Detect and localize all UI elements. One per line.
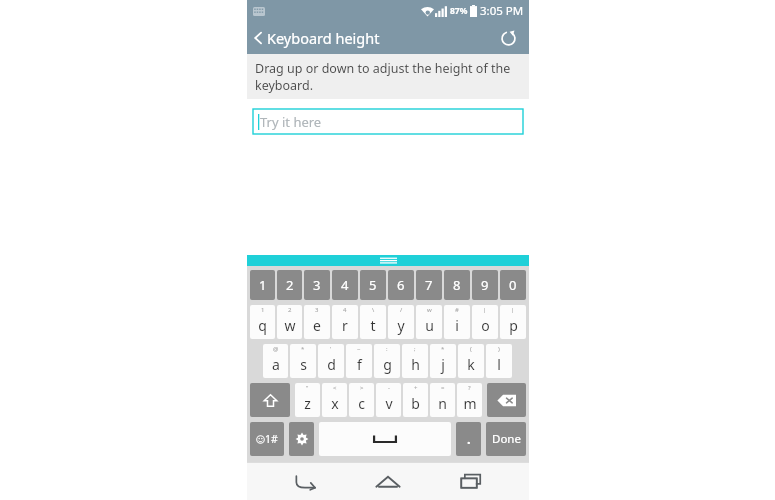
staticText: - [388, 384, 390, 392]
staticText: Drag up or down to adjust the height of … [255, 60, 521, 93]
button[interactable]: = [430, 383, 455, 417]
staticText: * [301, 345, 305, 353]
staticText: s [300, 355, 307, 374]
button[interactable]: - [376, 383, 401, 417]
staticText: p [509, 316, 518, 335]
button[interactable]: 3 [304, 305, 330, 339]
staticText: c [358, 394, 365, 413]
staticText: @ [273, 345, 279, 353]
staticText: l [497, 355, 501, 374]
button[interactable]: : [374, 344, 400, 378]
staticText: 2 [286, 276, 294, 294]
button[interactable]: Back [280, 465, 330, 497]
button[interactable]: ( [458, 344, 484, 378]
staticText: Keyboard height [267, 28, 380, 48]
button[interactable]: w [416, 305, 442, 339]
button[interactable]: Keyboard height [251, 28, 380, 48]
button[interactable]: Shift [250, 383, 290, 417]
staticText: n [438, 394, 447, 413]
staticText: w [427, 306, 432, 314]
button[interactable]: ; [402, 344, 428, 378]
button[interactable]: 0 [500, 270, 526, 300]
staticText: 3:05 PM [480, 3, 524, 19]
staticText: i [455, 316, 459, 335]
staticText: v [385, 394, 393, 413]
button[interactable]: ) [486, 344, 512, 378]
staticText: j [441, 355, 445, 374]
button[interactable]: @ [263, 344, 288, 378]
button[interactable]: Recents [446, 465, 496, 497]
staticText: 87% [450, 5, 468, 17]
staticText: z [304, 394, 311, 413]
staticText: ' [330, 345, 332, 353]
staticText: 1 [261, 306, 265, 314]
staticText: # [455, 306, 459, 314]
staticText: g [383, 355, 392, 374]
staticText: ~ [357, 345, 361, 353]
staticText: 9 [481, 276, 489, 294]
button[interactable]: \ [360, 305, 386, 339]
staticText: x [331, 394, 339, 413]
button[interactable]: Home [363, 465, 413, 497]
staticText: b [411, 394, 420, 413]
staticText: 8 [453, 276, 461, 294]
staticText: t [370, 316, 376, 335]
button[interactable]: Space [319, 422, 451, 456]
staticText: f [357, 355, 362, 374]
button[interactable]: | [472, 305, 498, 339]
button[interactable]: Period [456, 422, 481, 456]
staticText: ) [498, 345, 500, 353]
button[interactable]: 1 [250, 270, 275, 300]
button[interactable]: | [500, 305, 526, 339]
staticText: 4 [341, 276, 349, 294]
button[interactable]: ~ [346, 344, 372, 378]
button[interactable]: 8 [444, 270, 470, 300]
staticText: 1# [265, 432, 278, 446]
staticText: 0 [509, 276, 517, 294]
button[interactable]: Settings [289, 422, 314, 456]
button[interactable]: Reset [495, 25, 521, 51]
staticText: * [441, 345, 445, 353]
button[interactable]: 6 [388, 270, 414, 300]
button[interactable]: 2 [277, 270, 302, 300]
button[interactable]: 2 [277, 305, 302, 339]
staticText: e [313, 316, 321, 335]
staticText: \ [372, 306, 375, 314]
staticText: | [511, 306, 515, 314]
button[interactable]: 5 [360, 270, 386, 300]
button[interactable]: > [349, 383, 374, 417]
button[interactable]: " [295, 383, 320, 417]
button[interactable]: / [388, 305, 414, 339]
button[interactable]: 7 [416, 270, 442, 300]
button[interactable]: 4 [332, 305, 358, 339]
staticText: Try it here [260, 113, 322, 131]
button[interactable]: ' [318, 344, 344, 378]
staticText: y [397, 316, 405, 335]
staticText: 3 [315, 306, 319, 314]
button[interactable]: 4 [332, 270, 358, 300]
button[interactable]: # [444, 305, 470, 339]
button[interactable]: + [403, 383, 428, 417]
button[interactable]: Backspace [487, 383, 526, 417]
staticText: ? [468, 384, 471, 392]
button[interactable]: * [290, 344, 316, 378]
button[interactable]: 1 [250, 305, 275, 339]
staticText: " [306, 384, 309, 392]
button[interactable]: 3 [304, 270, 330, 300]
button[interactable]: 9 [472, 270, 498, 300]
staticText: 1 [259, 276, 267, 294]
staticText: u [425, 316, 434, 335]
button[interactable]: Done [486, 422, 526, 456]
staticText: d [327, 355, 336, 374]
staticText: Done [492, 431, 521, 447]
button[interactable]: * [430, 344, 456, 378]
staticText: : [386, 345, 388, 353]
staticText: = [441, 384, 445, 392]
staticText: . [467, 430, 471, 448]
button[interactable]: < [322, 383, 347, 417]
staticText: ( [470, 345, 472, 353]
button[interactable]: Symbols [250, 422, 284, 456]
staticText: w [284, 316, 296, 335]
button[interactable]: ? [457, 383, 482, 417]
button[interactable]: Try it here [253, 109, 523, 134]
